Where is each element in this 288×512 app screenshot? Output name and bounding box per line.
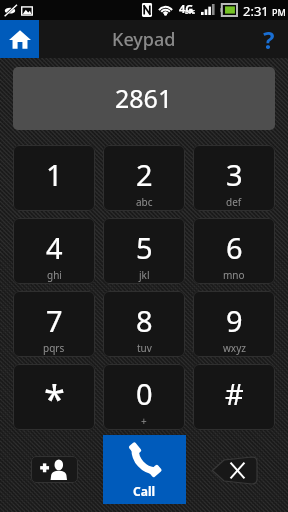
staticText: + bbox=[141, 414, 147, 428]
staticText: 4G bbox=[179, 1, 194, 16]
staticText: def bbox=[226, 195, 242, 209]
staticText: 7 bbox=[46, 301, 63, 340]
staticText: Call bbox=[133, 483, 156, 499]
staticText: tuv bbox=[137, 341, 152, 355]
button[interactable]: 4 bbox=[13, 218, 95, 284]
button[interactable]: 7 bbox=[13, 291, 95, 357]
staticText: 3 bbox=[226, 155, 243, 194]
staticText: ? bbox=[263, 23, 275, 56]
button[interactable]: * bbox=[13, 364, 95, 430]
button[interactable]: 0 bbox=[103, 364, 185, 430]
button[interactable]: 8 bbox=[103, 291, 185, 357]
button[interactable]: Add contact bbox=[31, 456, 78, 483]
button[interactable]: 2 bbox=[103, 145, 185, 211]
staticText: pqrs bbox=[43, 341, 65, 355]
staticText: 2861 bbox=[115, 81, 173, 115]
staticText: Keypad bbox=[112, 27, 176, 52]
staticText: mno bbox=[223, 268, 245, 282]
staticText: ghi bbox=[47, 268, 62, 282]
button[interactable]: 2861 bbox=[13, 67, 275, 130]
staticText: 0 bbox=[136, 374, 153, 413]
staticText: LTE bbox=[185, 8, 196, 16]
staticText: wxyz bbox=[223, 341, 246, 355]
button[interactable]: Help bbox=[250, 20, 288, 58]
staticText: 2 bbox=[136, 155, 153, 194]
button[interactable]: 6 bbox=[193, 218, 275, 284]
staticText: PM bbox=[272, 6, 286, 18]
staticText: 8 bbox=[136, 301, 153, 340]
staticText: 9 bbox=[226, 301, 243, 340]
button[interactable]: 1 bbox=[13, 145, 95, 211]
staticText: abc bbox=[136, 195, 153, 209]
staticText: 6 bbox=[226, 228, 243, 267]
button[interactable]: Home bbox=[0, 20, 39, 58]
button[interactable]: # bbox=[193, 364, 275, 430]
staticText: # bbox=[225, 374, 244, 413]
staticText: 4 bbox=[46, 228, 63, 267]
button[interactable]: Delete bbox=[210, 457, 257, 484]
staticText: 2:31 bbox=[243, 2, 269, 20]
button[interactable]: 9 bbox=[193, 291, 275, 357]
staticText: * bbox=[44, 372, 65, 424]
staticText: jkl bbox=[139, 268, 150, 282]
button[interactable]: 5 bbox=[103, 218, 185, 284]
staticText: 5 bbox=[136, 228, 153, 267]
button[interactable]: 3 bbox=[193, 145, 275, 211]
button[interactable]: Call bbox=[103, 435, 186, 504]
staticText: 1 bbox=[46, 155, 63, 194]
